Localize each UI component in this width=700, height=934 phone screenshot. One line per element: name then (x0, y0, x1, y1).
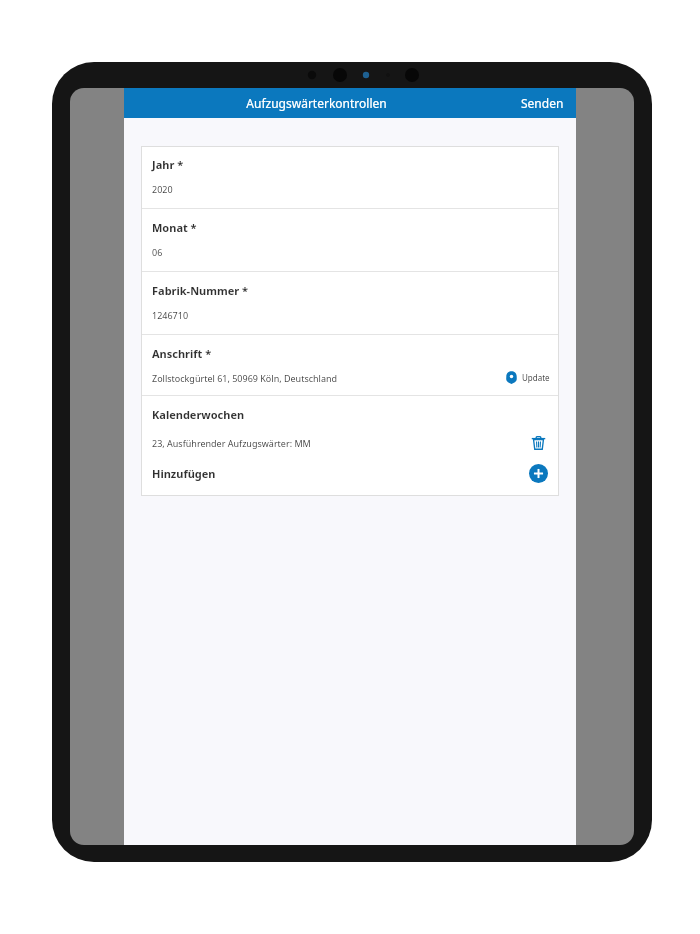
staticText: Anschrift * (152, 346, 212, 361)
staticText: 06 (152, 246, 163, 258)
button[interactable]: Update location (505, 371, 559, 384)
button[interactable]: Delete (531, 435, 559, 450)
staticText: Senden (521, 95, 564, 111)
button[interactable]: Hinzufügen (152, 464, 559, 483)
staticText: 1246710 (152, 309, 189, 321)
staticText: Monat * (152, 220, 197, 235)
staticText: Jahr * (152, 157, 184, 172)
button[interactable]: Fabrik-Nummer * (141, 272, 559, 334)
button[interactable]: Monat * (141, 209, 559, 271)
staticText: 23, Ausführender Aufzugswärter: MM (152, 437, 311, 449)
other: Add (529, 464, 559, 483)
staticText: Aufzugswärterkontrollen (246, 95, 387, 111)
staticText: Hinzufügen (152, 466, 216, 481)
staticText: Update (522, 372, 550, 383)
button[interactable]: Jahr * (141, 146, 559, 208)
staticText: 2020 (152, 183, 173, 195)
button[interactable]: Anschrift * (141, 335, 559, 395)
staticText: Kalenderwochen (152, 407, 245, 422)
staticText: Zollstockgürtel 61, 50969 Köln, Deutschl… (152, 372, 338, 384)
button[interactable]: Senden (509, 89, 576, 117)
button[interactable]: 23, Ausführender Aufzugswärter: MM (152, 435, 559, 450)
staticText: Fabrik-Nummer * (152, 283, 248, 298)
